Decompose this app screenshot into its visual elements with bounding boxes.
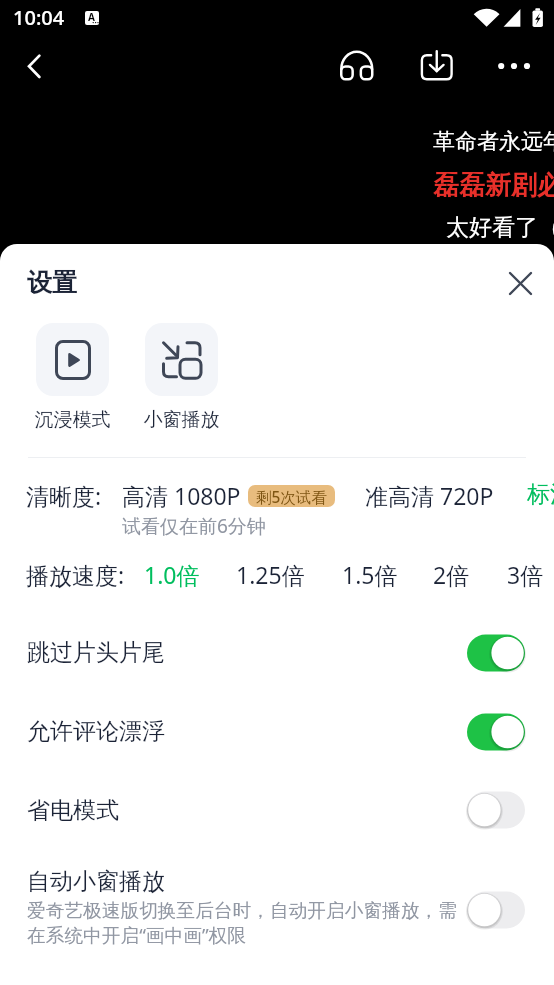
button[interactable]: 省电模式 <box>0 776 554 844</box>
button[interactable]: Download <box>410 40 462 90</box>
staticText: 剩5次试看 <box>256 486 327 507</box>
staticText: 革命者永远年轻 <box>433 128 554 156</box>
staticText: 2倍 <box>433 559 470 590</box>
button[interactable]: Picture in picture <box>145 323 218 396</box>
button[interactable]: More options <box>492 44 537 88</box>
staticText: 10:04 <box>13 4 65 31</box>
button[interactable]: 自动小窗播放 <box>0 855 554 955</box>
button[interactable]: 允许评论漂浮 <box>0 698 554 766</box>
staticText: 高清 1080P <box>122 480 241 511</box>
staticText: 沉浸模式 <box>31 408 114 432</box>
staticText: 准高清 720P <box>365 480 494 511</box>
staticText: 试看仅在前6分钟 <box>122 513 266 539</box>
staticText: 播放速度: <box>26 559 125 590</box>
button[interactable]: Immersive mode <box>36 323 109 396</box>
button[interactable]: Close <box>498 261 542 305</box>
staticText: 小窗播放 <box>140 408 223 432</box>
staticText: 太好看了（哈 <box>446 213 554 242</box>
staticText: 跳过片头片尾 <box>27 638 165 667</box>
staticText: 清晰度: <box>26 480 102 511</box>
staticText: 自动小窗播放 <box>27 867 165 896</box>
staticText: 设置 <box>27 267 77 298</box>
staticText: 允许评论漂浮 <box>27 717 165 746</box>
staticText: 1.25倍 <box>236 559 305 590</box>
staticText: 标清 <box>527 480 554 509</box>
button[interactable]: Back <box>6 44 50 88</box>
staticText: 省电模式 <box>27 796 119 825</box>
button[interactable]: 跳过片头片尾 <box>0 619 554 687</box>
staticText: A <box>88 11 95 24</box>
staticText: 爱奇艺极速版切换至后台时，自动开启小窗播放，需 在系统中开启“画中画”权限 <box>27 899 457 947</box>
staticText: 1.0倍 <box>144 559 200 590</box>
button[interactable]: Audio mode <box>335 44 379 88</box>
staticText: 1.5倍 <box>342 559 398 590</box>
staticText: 磊磊新剧必看啊 <box>433 169 554 202</box>
staticText: 3倍 <box>507 559 544 590</box>
